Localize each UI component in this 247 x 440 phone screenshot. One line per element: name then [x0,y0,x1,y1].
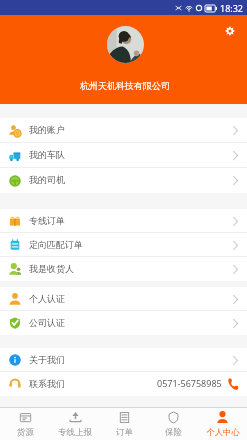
staticText: 0571-56758985 [157,377,222,389]
staticText: 货源 [17,427,34,438]
staticText: 专线上报 [58,427,92,438]
button[interactable]: 个人中心 [198,408,247,440]
button[interactable]: 我的司机 [0,168,247,193]
button[interactable]: Profile photo [107,26,144,63]
staticText: 专线订单 [29,215,65,226]
button[interactable]: 关于我们 [0,348,247,372]
button[interactable]: 定向匹配订单 [0,233,247,257]
staticText: 我的账户 [29,124,65,135]
staticText: 订单 [116,427,133,438]
staticText: 保险 [165,427,182,438]
button[interactable]: 个人认证 [0,287,247,311]
staticText: 18:32 [220,2,244,14]
staticText: 我的车队 [29,149,65,160]
button[interactable]: 保险 [149,408,198,440]
button[interactable]: Settings [225,26,235,36]
button[interactable]: 专线订单 [0,209,247,233]
staticText: 定向匹配订单 [29,239,83,250]
button[interactable]: 我的账户 [0,118,247,143]
button[interactable]: 订单 [100,408,149,440]
button[interactable]: 专线上报 [50,408,100,440]
staticText: 关于我们 [29,354,65,365]
button[interactable]: 联系我们 [0,372,247,396]
staticText: 个人认证 [29,293,65,304]
staticText: 我是收货人 [29,263,74,274]
button[interactable]: 我的车队 [0,143,247,168]
staticText: 公司认证 [29,317,65,328]
staticText: 联系我们 [29,378,65,389]
staticText: 个人中心 [206,427,240,438]
staticText: 杭州天机科技有限公司 [80,80,170,91]
button[interactable]: 公司认证 [0,311,247,335]
staticText: 我的司机 [29,174,65,185]
button[interactable]: 我是收货人 [0,257,247,281]
button[interactable]: 货源 [0,408,50,440]
